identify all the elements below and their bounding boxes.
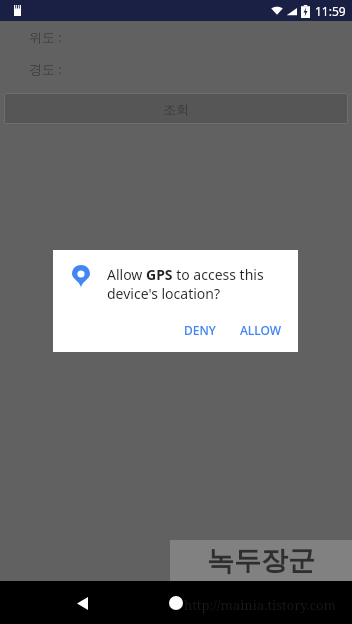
button[interactable]: Home [160,587,192,619]
staticText: 녹두장군 [207,544,315,578]
staticText: 11:59 [315,3,346,19]
staticText: 경도 : [29,60,62,78]
staticText: Allow GPS to access this device's locati… [107,265,282,303]
staticText: http://mainia.tistory.com [184,596,336,614]
staticText: ALLOW [240,322,282,338]
staticText: 위도 : [29,28,62,46]
button[interactable]: ALLOW [232,316,290,344]
button[interactable]: Back [66,587,98,619]
button[interactable]: DENY [176,316,224,344]
staticText: 조회 [163,101,189,117]
staticText: DENY [184,322,216,338]
